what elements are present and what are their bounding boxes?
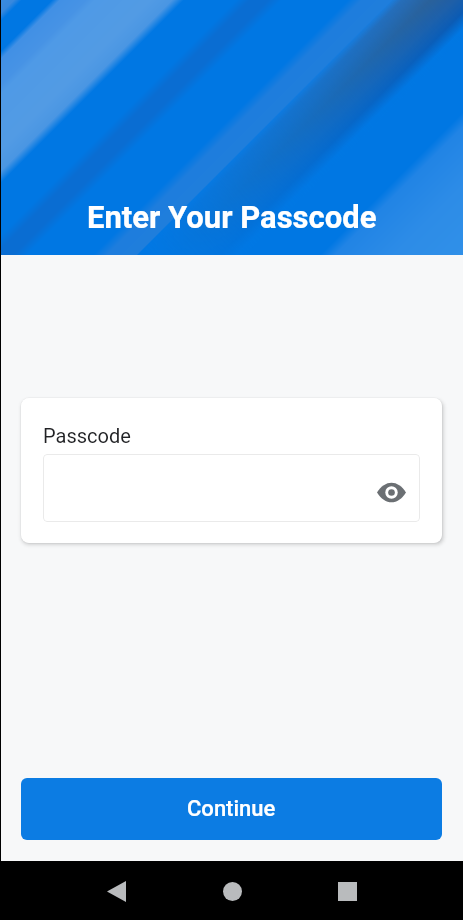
staticText: Enter Your Passcode [87,199,377,235]
button[interactable]: Show passcode [376,477,406,507]
button[interactable]: Show passcode [43,454,420,522]
staticText: Continue [187,796,276,822]
button[interactable]: Home [208,867,256,915]
staticText: Passcode [43,424,131,447]
button[interactable]: Recent apps [323,867,371,915]
button[interactable]: Back [92,867,140,915]
button[interactable]: Continue [21,778,442,840]
